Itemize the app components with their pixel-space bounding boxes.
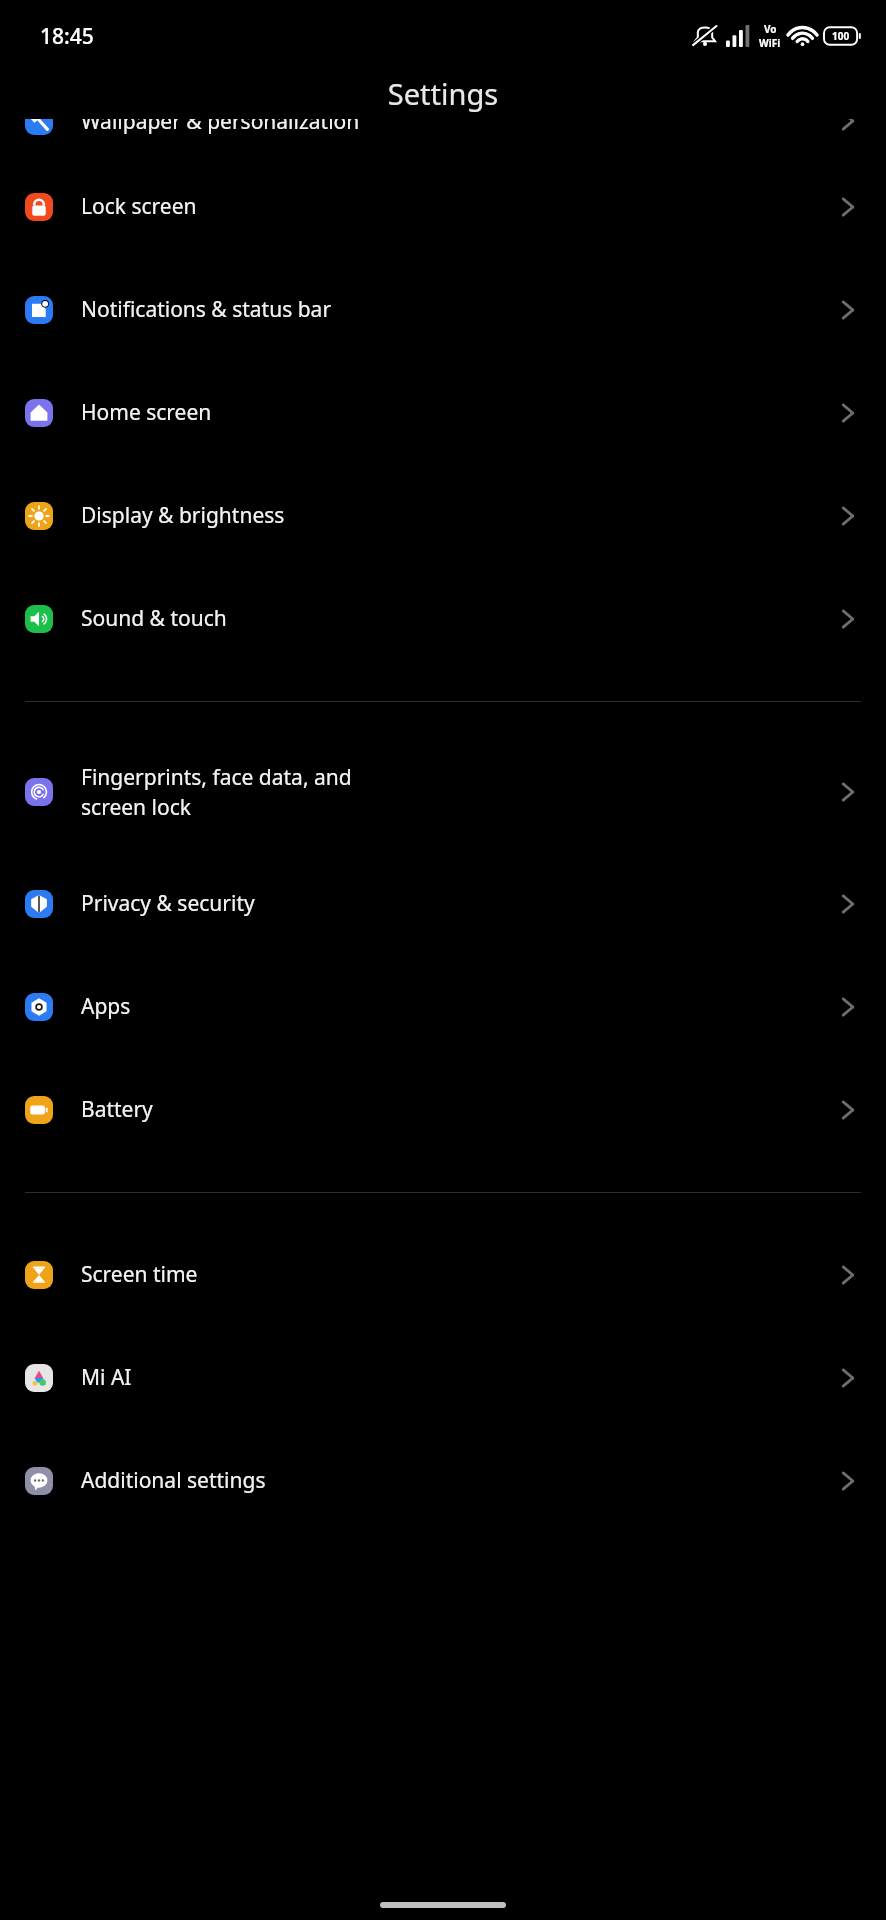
staticText: Battery xyxy=(81,1095,826,1124)
button[interactable]: Notifications & status bar xyxy=(0,258,886,361)
button[interactable]: Display & brightness xyxy=(0,464,886,567)
staticText: Vo xyxy=(764,22,777,36)
staticText: Screen time xyxy=(81,1260,826,1289)
staticText: Settings xyxy=(0,74,886,113)
staticText: Fingerprints, face data, and screen lock xyxy=(81,763,826,821)
button[interactable]: Screen time xyxy=(0,1223,886,1326)
staticText: Wallpaper & personalization xyxy=(81,119,826,136)
button[interactable]: Wallpaper & personalization xyxy=(0,119,886,139)
button[interactable]: Additional settings xyxy=(0,1429,886,1532)
staticText: Notifications & status bar xyxy=(81,295,826,324)
staticText: Privacy & security xyxy=(81,889,826,918)
staticText: Lock screen xyxy=(81,192,826,221)
staticText: Mi AI xyxy=(81,1363,826,1392)
staticText: 18:45 xyxy=(40,22,94,51)
button[interactable]: Sound & touch xyxy=(0,567,886,670)
button[interactable]: Mi AI xyxy=(0,1326,886,1429)
staticText: Sound & touch xyxy=(81,604,826,633)
staticText: Display & brightness xyxy=(81,501,826,530)
staticText: WiFi xyxy=(759,36,781,50)
staticText: Additional settings xyxy=(81,1466,826,1495)
button[interactable]: Battery xyxy=(0,1058,886,1161)
staticText: 100 xyxy=(832,29,850,43)
button[interactable]: Home screen xyxy=(0,361,886,464)
button[interactable]: Privacy & security xyxy=(0,852,886,955)
button[interactable]: Fingerprints, face data, and screen lock xyxy=(0,732,886,852)
button[interactable]: Lock screen xyxy=(0,155,886,258)
staticText: Home screen xyxy=(81,398,826,427)
staticText: Apps xyxy=(81,992,826,1021)
button[interactable]: Apps xyxy=(0,955,886,1058)
